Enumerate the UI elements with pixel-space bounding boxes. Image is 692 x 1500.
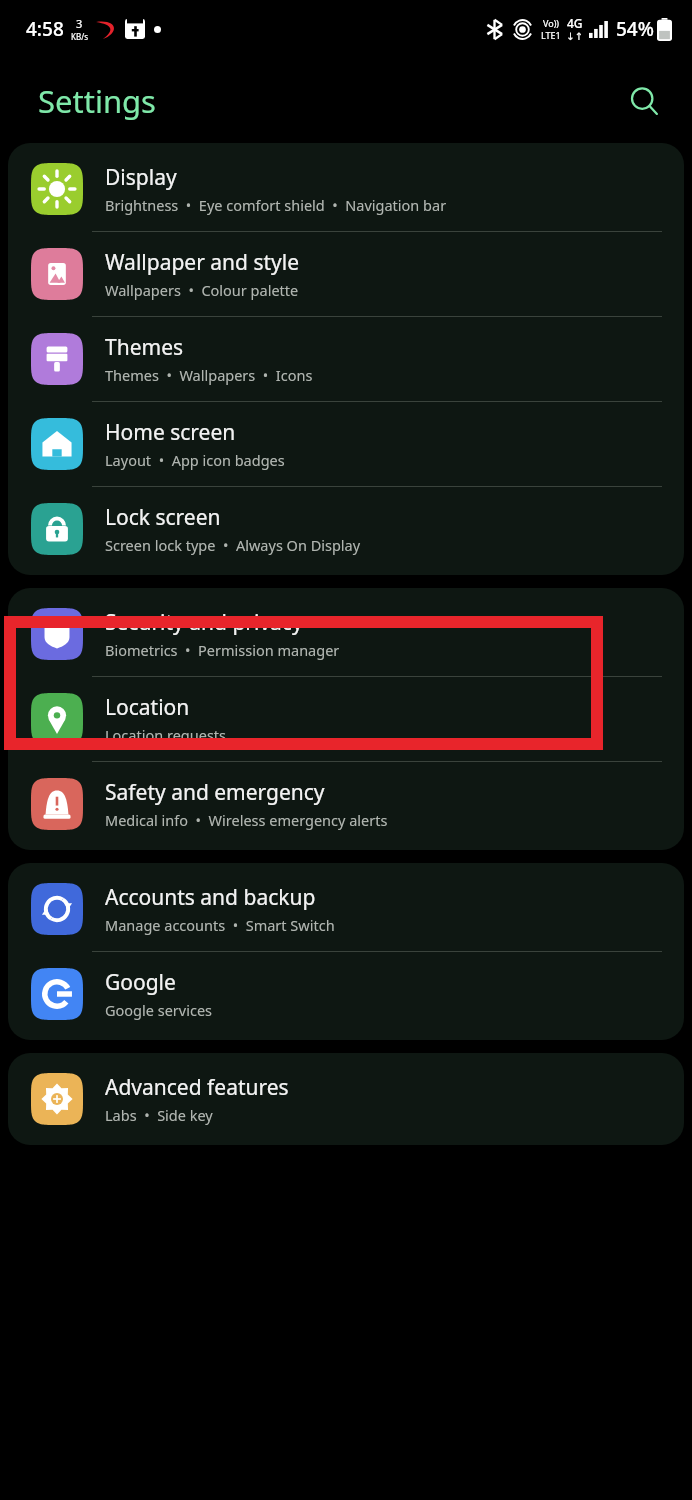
button[interactable]: Google <box>8 952 684 1036</box>
staticText: KB/s <box>71 31 88 42</box>
staticText: Themes • Wallpapers • Icons <box>105 365 313 385</box>
staticText: 4:58 <box>26 16 64 42</box>
button[interactable]: Advanced features <box>8 1057 684 1141</box>
staticText: Lock screen <box>105 503 221 532</box>
staticText: Screen lock type • Always On Display <box>105 535 361 555</box>
button[interactable]: Home screen <box>8 402 684 486</box>
staticText: 3 <box>76 16 83 31</box>
staticText: Manage accounts • Smart Switch <box>105 915 335 935</box>
button[interactable]: Display <box>8 147 684 231</box>
staticText: Themes <box>105 333 184 362</box>
staticText: ↓↑ <box>566 31 583 43</box>
staticText: Display <box>105 163 177 192</box>
staticText: Labs • Side key <box>105 1105 213 1125</box>
staticText: Brightness • Eye comfort shield • Naviga… <box>105 195 447 215</box>
staticText: Home screen <box>105 418 236 447</box>
staticText: Layout • App icon badges <box>105 450 285 470</box>
staticText: Safety and emergency <box>105 778 325 807</box>
staticText: Wallpaper and style <box>105 248 300 277</box>
button[interactable]: Search <box>620 77 668 125</box>
staticText: Biometrics • Permission manager <box>105 640 340 660</box>
button[interactable]: Lock screen <box>8 487 684 571</box>
staticText: Google <box>105 968 176 997</box>
button[interactable]: Themes <box>8 317 684 401</box>
staticText: Wallpapers • Colour palette <box>105 280 299 300</box>
staticText: Location <box>105 693 190 722</box>
staticText: Medical info • Wireless emergency alerts <box>105 810 388 830</box>
button[interactable]: Security and privacy <box>8 592 684 676</box>
button[interactable]: Safety and emergency <box>8 762 684 846</box>
staticText: Security and privacy <box>105 608 303 637</box>
staticText: LTE1 <box>541 29 561 41</box>
button[interactable]: Wallpaper and style <box>8 232 684 316</box>
staticText: Advanced features <box>105 1073 289 1102</box>
staticText: Settings <box>38 80 156 122</box>
button[interactable]: Accounts and backup <box>8 867 684 951</box>
staticText: Accounts and backup <box>105 883 316 912</box>
staticText: 4G <box>567 15 583 31</box>
staticText: Location requests <box>105 725 227 745</box>
staticText: Google services <box>105 1000 213 1020</box>
button[interactable]: Location <box>8 677 684 761</box>
staticText: 54% <box>616 16 654 42</box>
staticText: Vo)) <box>543 17 560 29</box>
